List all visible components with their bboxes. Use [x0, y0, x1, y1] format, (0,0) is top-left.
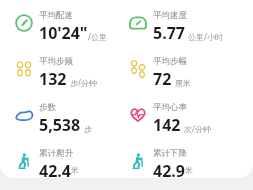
staticText: 累计下降 [153, 148, 187, 159]
staticText: 5.77 [153, 22, 185, 44]
staticText: 10'24" [39, 22, 88, 44]
other: 平均步频 [14, 59, 34, 79]
staticText: 步 [84, 124, 92, 134]
button[interactable]: 平均心率 [128, 101, 243, 137]
button[interactable]: 平均步幅 [128, 55, 243, 91]
staticText: 42.4 [39, 160, 71, 177]
staticText: 次/分钟 [184, 123, 211, 134]
staticText: 132 [39, 68, 67, 90]
other: 步数 [14, 105, 34, 125]
other: 平均配速 [14, 13, 34, 33]
other: 平均步幅 [128, 59, 148, 79]
other: 累计爬升 [14, 151, 34, 171]
staticText: 步数 [39, 102, 56, 113]
staticText: 平均步幅 [153, 56, 187, 67]
button[interactable]: 平均速度 [128, 9, 243, 45]
button[interactable]: 累计下降 [128, 147, 243, 178]
staticText: 米 [185, 165, 193, 175]
staticText: 42.9 [153, 160, 185, 177]
staticText: /公里 [88, 31, 107, 42]
staticText: 72 [153, 68, 172, 90]
button[interactable]: 步数 [14, 101, 128, 137]
staticText: 平均速度 [153, 10, 187, 21]
button[interactable]: 平均配速 [14, 9, 128, 45]
button[interactable]: 累计爬升 [14, 147, 128, 178]
staticText: 平均配速 [39, 10, 73, 21]
other: 平均心率 [128, 105, 148, 125]
staticText: 米 [71, 165, 79, 175]
staticText: 平均步频 [39, 56, 73, 67]
staticText: 平均心率 [153, 102, 187, 113]
button[interactable]: 平均步频 [14, 55, 128, 91]
staticText: 步/分钟 [70, 77, 97, 88]
staticText: 5,538 [39, 114, 81, 136]
other: 平均速度 [128, 13, 148, 33]
staticText: 142 [153, 114, 181, 136]
staticText: 厘米 [175, 78, 191, 88]
staticText: 公里/小时 [188, 31, 223, 42]
staticText: 累计爬升 [39, 148, 73, 159]
other: 累计下降 [128, 151, 148, 171]
